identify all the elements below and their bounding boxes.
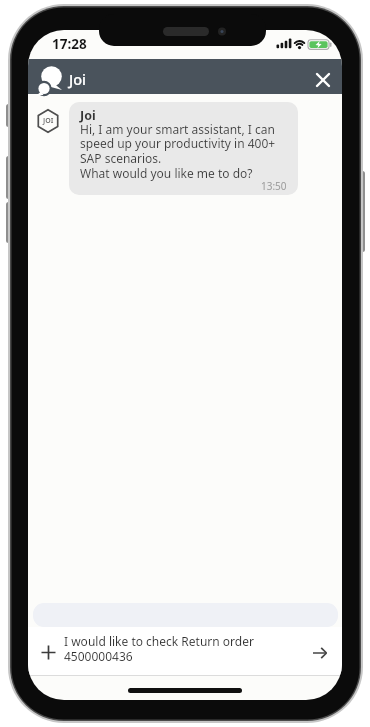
staticText: Joi	[69, 69, 86, 89]
button[interactable]	[313, 646, 328, 660]
button[interactable]	[41, 645, 56, 660]
staticText: 17:28	[52, 35, 87, 53]
button[interactable]	[310, 67, 336, 93]
staticText: JOI	[43, 116, 54, 126]
button[interactable]: I would like to check Return order 45000…	[64, 633, 254, 665]
staticText: 13:50	[261, 179, 287, 193]
staticText: Hi, I am your smart assistant, I can spe…	[80, 121, 276, 182]
staticText: Joi	[80, 107, 96, 124]
button[interactable]: Joi	[69, 102, 298, 195]
